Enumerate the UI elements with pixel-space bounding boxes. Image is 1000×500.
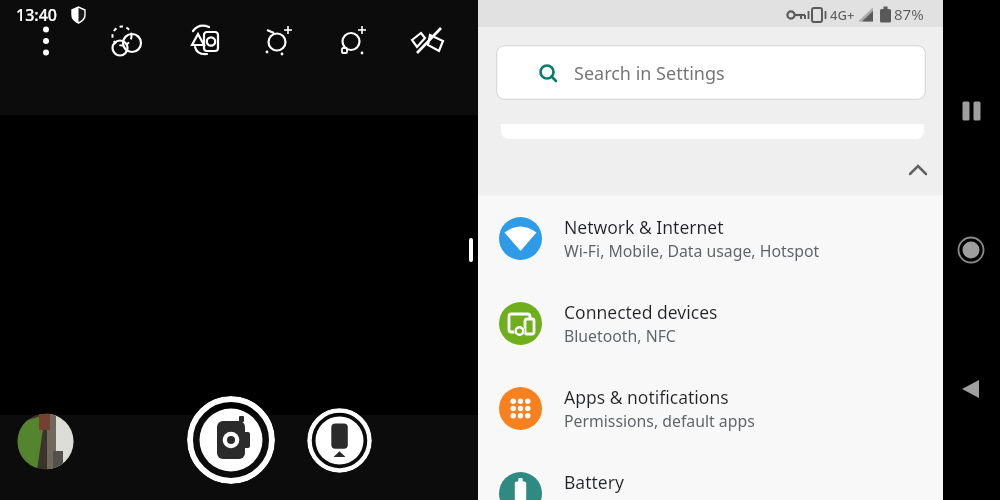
button[interactable] <box>332 21 372 61</box>
button[interactable] <box>105 21 145 61</box>
button[interactable] <box>902 154 934 186</box>
staticText: Apps & notifications <box>564 385 729 409</box>
button[interactable]: Apps & notifications <box>478 366 943 450</box>
button[interactable] <box>187 396 275 484</box>
button[interactable] <box>17 413 74 470</box>
staticText: Connected devices <box>564 300 718 324</box>
staticText: Search in Settings <box>574 61 725 86</box>
staticText: Battery <box>564 470 624 494</box>
button[interactable] <box>26 21 66 61</box>
button[interactable] <box>947 87 995 135</box>
staticText: Network & Internet <box>564 215 724 239</box>
staticText: 13:40 <box>16 4 57 26</box>
button[interactable] <box>410 21 450 61</box>
button[interactable]: Battery <box>478 451 943 500</box>
button[interactable]: Search in Settings <box>496 45 926 100</box>
button[interactable]: Network & Internet <box>478 196 943 280</box>
button[interactable] <box>186 21 226 61</box>
button[interactable] <box>258 21 298 61</box>
button[interactable] <box>947 365 995 413</box>
button[interactable]: Connected devices <box>478 281 943 365</box>
staticText: 87% <box>894 4 924 24</box>
staticText: 4G+ <box>830 6 855 24</box>
staticText: Wi-Fi, Mobile, Data usage, Hotspot <box>564 240 820 262</box>
button[interactable] <box>307 408 372 473</box>
staticText: Bluetooth, NFC <box>564 325 676 347</box>
staticText: Permissions, default apps <box>564 410 755 432</box>
button[interactable] <box>947 226 995 274</box>
